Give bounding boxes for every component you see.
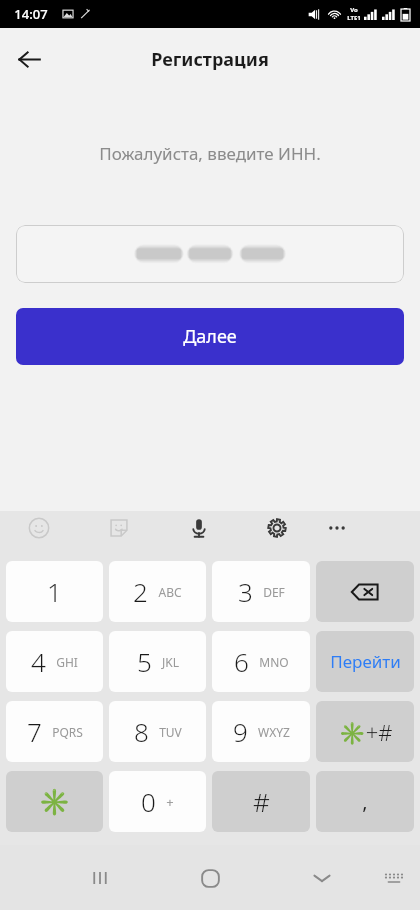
button[interactable]: ✳+#: [316, 701, 414, 762]
button[interactable]: 4: [6, 631, 103, 692]
staticText: Регистрация: [0, 47, 420, 72]
button[interactable]: Выбрать клавиатуру: [374, 858, 414, 898]
staticText: 14:07: [14, 5, 48, 23]
staticText: LTE1: [347, 14, 361, 22]
staticText: 3: [238, 574, 253, 609]
button[interactable]: ,: [316, 771, 414, 832]
staticText: 0: [141, 784, 156, 819]
button[interactable]: 2: [109, 561, 206, 622]
button[interactable]: 6: [212, 631, 310, 692]
staticText: Пожалуйста, введите ИНН.: [0, 142, 420, 165]
button[interactable]: Назад: [8, 38, 50, 80]
button[interactable]: Удалить: [316, 561, 414, 622]
button[interactable]: Голосовой ввод: [182, 511, 216, 545]
staticText: 9: [233, 714, 248, 749]
button[interactable]: Ещё: [320, 511, 354, 545]
staticText: +: [166, 793, 174, 811]
button[interactable]: Скрыть клавиатуру: [300, 856, 344, 900]
button[interactable]: Стикеры: [102, 511, 136, 545]
staticText: Перейти: [330, 650, 401, 673]
button[interactable]: Эмодзи: [22, 511, 56, 545]
staticText: ✳+#: [338, 717, 393, 747]
button[interactable]: Домой: [186, 854, 234, 902]
button[interactable]: 3: [212, 561, 310, 622]
staticText: Vo: [350, 6, 358, 14]
staticText: DEF: [263, 584, 285, 600]
staticText: Далее: [183, 324, 237, 349]
staticText: PQRS: [52, 724, 83, 740]
staticText: ABC: [158, 584, 182, 600]
button[interactable]: [16, 225, 404, 283]
button[interactable]: Недавние: [78, 856, 122, 900]
button[interactable]: Перейти: [316, 631, 414, 692]
staticText: 8: [134, 714, 149, 749]
staticText: 1: [47, 574, 62, 609]
button[interactable]: 0: [109, 771, 206, 832]
staticText: WXYZ: [258, 724, 290, 740]
staticText: 6: [234, 644, 249, 679]
staticText: ✳: [38, 787, 71, 817]
button[interactable]: 1: [6, 561, 103, 622]
staticText: ,: [362, 788, 368, 815]
button[interactable]: ✳: [6, 771, 103, 832]
button[interactable]: Настройки: [260, 511, 294, 545]
staticText: GHI: [56, 654, 78, 670]
button[interactable]: 5: [109, 631, 206, 692]
staticText: 7: [27, 714, 42, 749]
staticText: TUV: [159, 724, 182, 740]
staticText: 2: [133, 574, 148, 609]
staticText: JKL: [162, 654, 179, 670]
button[interactable]: 7: [6, 701, 103, 762]
button[interactable]: 8: [109, 701, 206, 762]
staticText: MNO: [259, 654, 289, 670]
staticText: 4: [31, 644, 46, 679]
button[interactable]: Далее: [16, 308, 404, 365]
button[interactable]: 9: [212, 701, 310, 762]
button[interactable]: #: [212, 771, 310, 832]
staticText: #: [253, 784, 270, 819]
staticText: 5: [137, 644, 152, 679]
